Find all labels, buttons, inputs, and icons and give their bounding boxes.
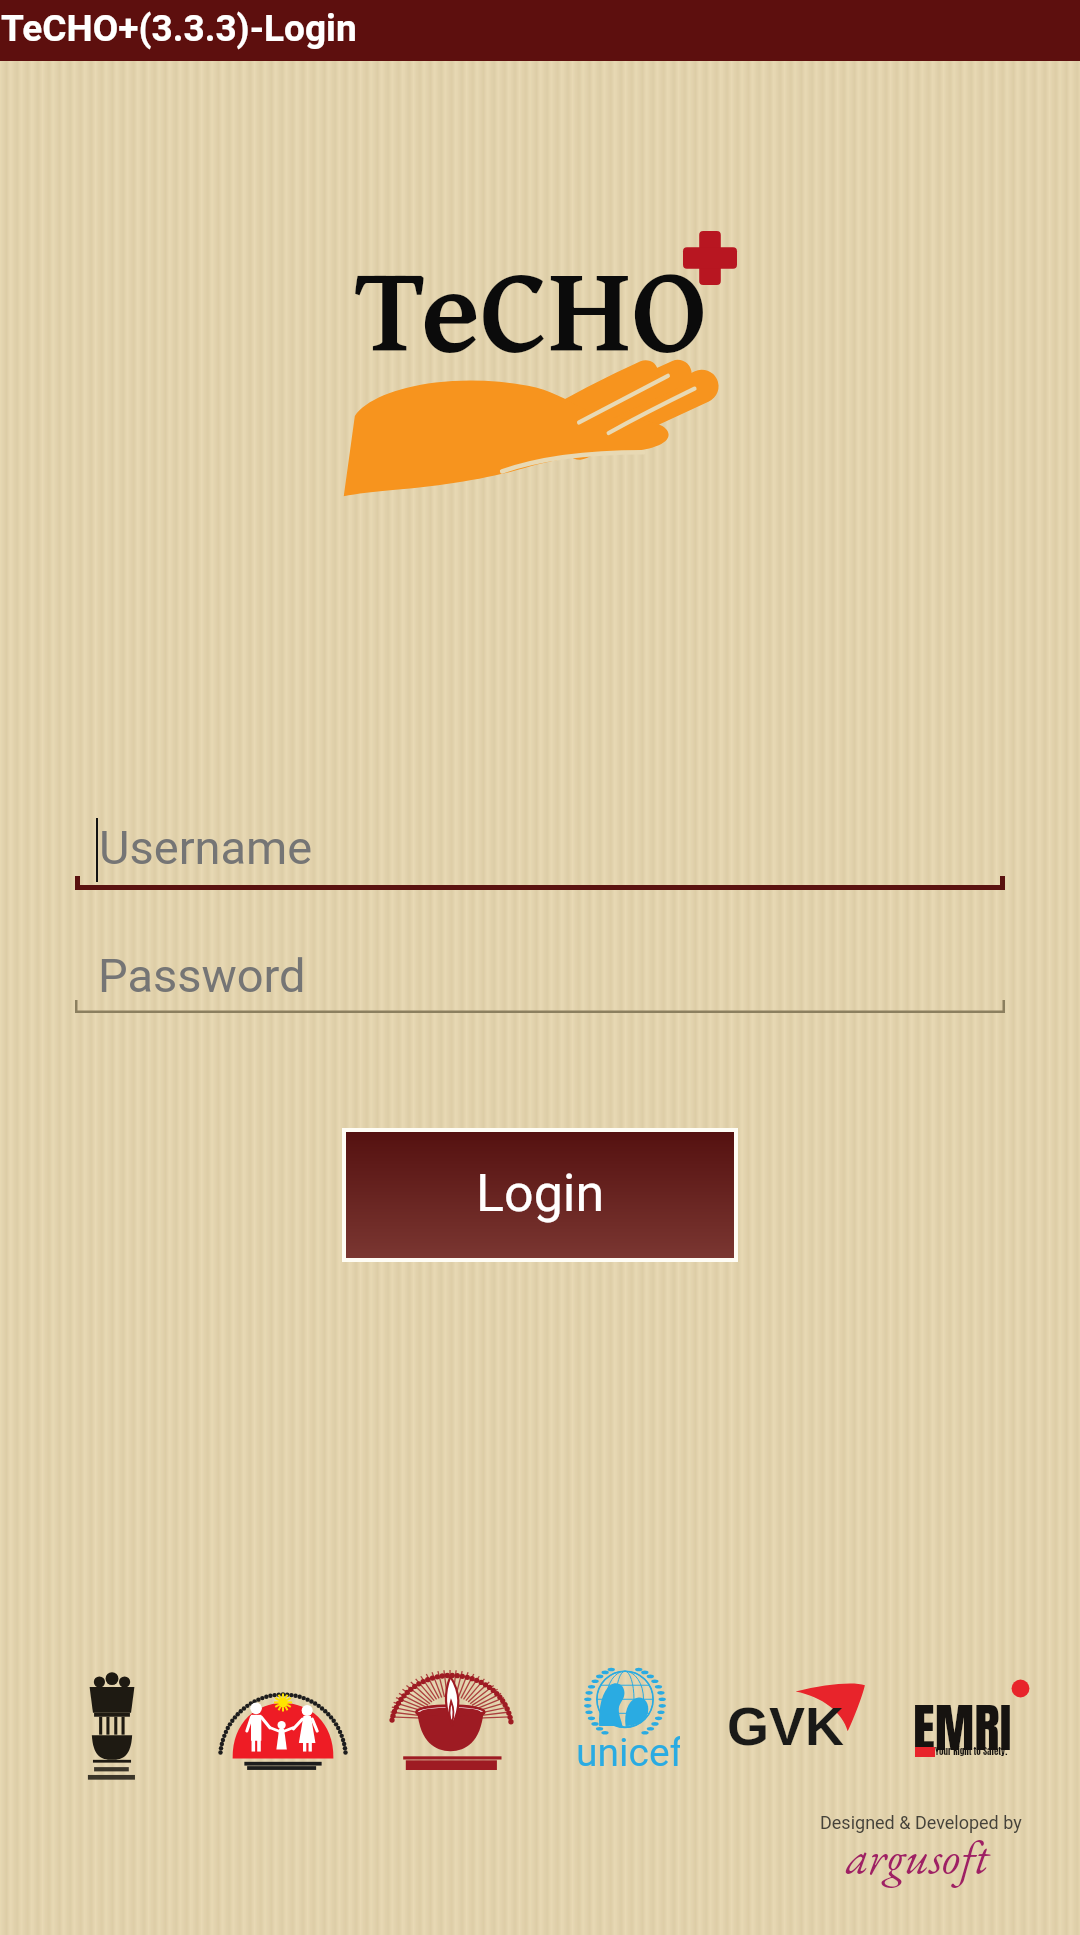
staticText: unicef bbox=[576, 1730, 680, 1776]
staticText: Login bbox=[476, 1163, 605, 1224]
staticText: argusoft bbox=[846, 1827, 990, 1888]
button[interactable]: Login bbox=[346, 1132, 734, 1258]
staticText: Password bbox=[98, 948, 306, 1003]
staticText: Username bbox=[99, 820, 313, 875]
button[interactable]: Username field bbox=[75, 876, 1005, 890]
staticText: Your Right to Safety. bbox=[935, 1744, 1008, 1758]
staticText: EMRI bbox=[913, 1688, 1012, 1768]
button[interactable]: Password field bbox=[75, 1000, 1005, 1013]
staticText: GVK bbox=[727, 1696, 845, 1756]
staticText: TeCHO bbox=[355, 217, 708, 396]
staticText: TeCHO+(3.3.3)-Login bbox=[1, 7, 357, 50]
staticText: Designed & Developed by bbox=[820, 1812, 1022, 1833]
